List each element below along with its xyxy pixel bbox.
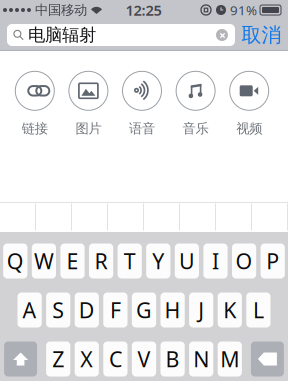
button[interactable]: K (218, 292, 242, 327)
staticText: V (137, 345, 150, 373)
staticText: B (166, 345, 180, 373)
button[interactable]: W (32, 243, 56, 278)
button[interactable]: C (103, 341, 127, 376)
button[interactable]: I (203, 243, 228, 278)
button[interactable]: Z (46, 341, 70, 376)
button[interactable]: R (89, 243, 113, 278)
staticText: 12:25 (125, 0, 161, 20)
staticText: U (179, 247, 195, 275)
button[interactable]: B (160, 341, 185, 376)
staticText: J (198, 296, 204, 324)
button[interactable]: Candidate (252, 202, 288, 232)
button[interactable]: F (103, 292, 127, 327)
button[interactable]: Candidate (108, 202, 144, 232)
staticText: Q (7, 247, 24, 275)
button[interactable]: Shift (4, 341, 37, 376)
staticText: W (34, 247, 54, 275)
staticText: H (165, 296, 181, 324)
staticText: 音乐 (183, 120, 209, 137)
button[interactable]: 图片 (62, 73, 115, 135)
button[interactable]: Candidate (216, 202, 252, 232)
staticText: I (212, 247, 219, 275)
button[interactable]: J (189, 292, 213, 327)
staticText: T (124, 247, 136, 275)
button[interactable]: Q (3, 243, 27, 278)
staticText: 91% (230, 1, 257, 19)
button[interactable]: E (60, 243, 85, 278)
button[interactable]: Candidate (144, 202, 180, 232)
button[interactable]: H (160, 292, 185, 327)
button[interactable]: D (75, 292, 99, 327)
staticText: 中国移动 (35, 2, 87, 18)
button[interactable]: Y (146, 243, 170, 278)
staticText: F (110, 296, 121, 324)
staticText: Z (52, 345, 64, 373)
staticText: N (193, 345, 209, 373)
button[interactable]: X (75, 341, 99, 376)
staticText: E (66, 247, 78, 275)
button[interactable]: S (46, 292, 70, 327)
staticText: A (23, 296, 37, 324)
button[interactable]: 取消 (235, 21, 288, 49)
button[interactable]: M (218, 341, 242, 376)
staticText: M (220, 345, 239, 373)
button[interactable]: Delete (251, 341, 284, 376)
button[interactable]: U (175, 243, 199, 278)
button[interactable]: A (17, 292, 42, 327)
button[interactable]: 视频 (222, 73, 276, 135)
staticText: K (223, 296, 236, 324)
button[interactable]: Candidate (0, 202, 36, 232)
staticText: L (253, 296, 264, 324)
button[interactable]: Candidate (72, 202, 108, 232)
staticText: C (109, 345, 122, 373)
staticText: O (236, 247, 253, 275)
button[interactable]: T (118, 243, 142, 278)
staticText: 语音 (129, 120, 155, 137)
button[interactable]: 链接 (8, 73, 62, 135)
button[interactable]: Candidate (180, 202, 216, 232)
staticText: 图片 (75, 120, 101, 137)
button[interactable]: O (232, 243, 256, 278)
button[interactable]: P (261, 243, 285, 278)
staticText: R (95, 247, 108, 275)
staticText: 取消 (241, 23, 281, 47)
staticText: D (79, 296, 95, 324)
button[interactable]: G (132, 292, 156, 327)
button[interactable]: Clear text (216, 29, 235, 41)
button[interactable]: Candidate (36, 202, 72, 232)
staticText: G (136, 296, 152, 324)
staticText: 电脑辐射 (28, 24, 96, 46)
staticText: 视频 (236, 120, 262, 137)
button[interactable]: N (189, 341, 213, 376)
staticText: S (52, 296, 64, 324)
staticText: P (266, 247, 279, 275)
button[interactable]: L (246, 292, 270, 327)
button[interactable]: V (132, 341, 156, 376)
button[interactable]: 语音 (115, 73, 169, 135)
button[interactable]: 音乐 (169, 73, 222, 135)
staticText: X (80, 345, 93, 373)
staticText: Y (152, 247, 164, 275)
staticText: 链接 (22, 120, 48, 137)
